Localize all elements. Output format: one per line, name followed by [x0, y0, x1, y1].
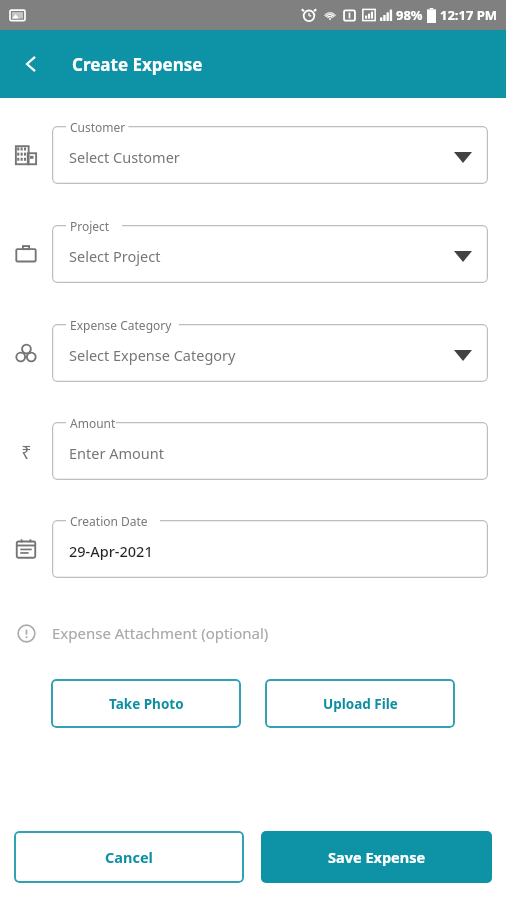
staticText: ₹: [21, 440, 32, 462]
staticText: Create Expense: [72, 53, 203, 76]
button[interactable]: Enter Amount: [52, 422, 488, 480]
staticText: Project: [70, 218, 110, 234]
staticText: Cancel: [105, 847, 153, 867]
button[interactable]: Cancel: [14, 831, 244, 883]
staticText: Expense Category: [70, 317, 172, 333]
button[interactable]: Select Project: [52, 225, 488, 283]
staticText: Select Expense Category: [69, 345, 236, 365]
staticText: Save Expense: [328, 847, 426, 867]
button[interactable]: Back: [8, 41, 54, 87]
staticText: 29-Apr-2021: [69, 541, 153, 561]
button[interactable]: Select Customer: [52, 126, 488, 184]
button[interactable]: Save Expense: [261, 831, 492, 883]
staticText: Take Photo: [109, 695, 184, 713]
button[interactable]: Upload File: [265, 679, 455, 728]
staticText: Amount: [70, 415, 116, 431]
button[interactable]: Take Photo: [51, 679, 241, 728]
staticText: 12:17 PM: [440, 6, 498, 24]
staticText: Select Customer: [69, 147, 180, 167]
button[interactable]: 29-Apr-2021: [52, 520, 488, 578]
staticText: Creation Date: [70, 513, 148, 529]
staticText: Customer: [70, 119, 126, 135]
button[interactable]: Select Expense Category: [52, 324, 488, 382]
staticText: Select Project: [69, 246, 161, 266]
staticText: Enter Amount: [69, 443, 164, 463]
staticText: Expense Attachment (optional): [52, 623, 269, 643]
staticText: Upload File: [323, 695, 398, 713]
staticText: 98%: [396, 6, 423, 24]
